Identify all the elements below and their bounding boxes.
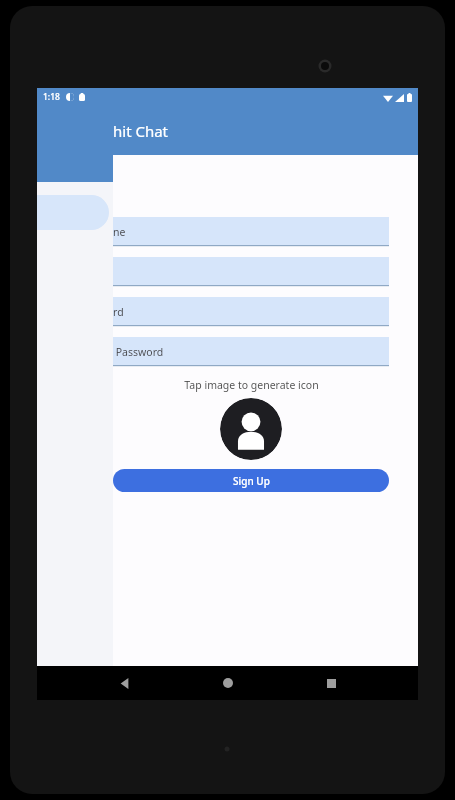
staticText: Tap image to generate icon [184, 378, 319, 392]
staticText: hit Chat [113, 121, 169, 141]
button[interactable]: Password [113, 337, 389, 366]
button[interactable]: Recents [315, 667, 347, 699]
staticText: rd [113, 305, 124, 319]
button[interactable]: rd [113, 297, 389, 326]
button[interactable]: Sign Up [113, 469, 389, 492]
button[interactable] [113, 257, 389, 286]
button[interactable]: Tap image to generate icon [220, 398, 282, 460]
button[interactable]: ne [113, 217, 389, 246]
button[interactable]: Drawer item [37, 195, 109, 230]
staticText: 1:18 [43, 91, 60, 103]
staticText: ne [113, 225, 126, 239]
button[interactable]: Home [212, 667, 244, 699]
staticText: Password [113, 345, 164, 359]
button[interactable]: Back [108, 667, 140, 699]
staticText: Sign Up [233, 474, 270, 488]
